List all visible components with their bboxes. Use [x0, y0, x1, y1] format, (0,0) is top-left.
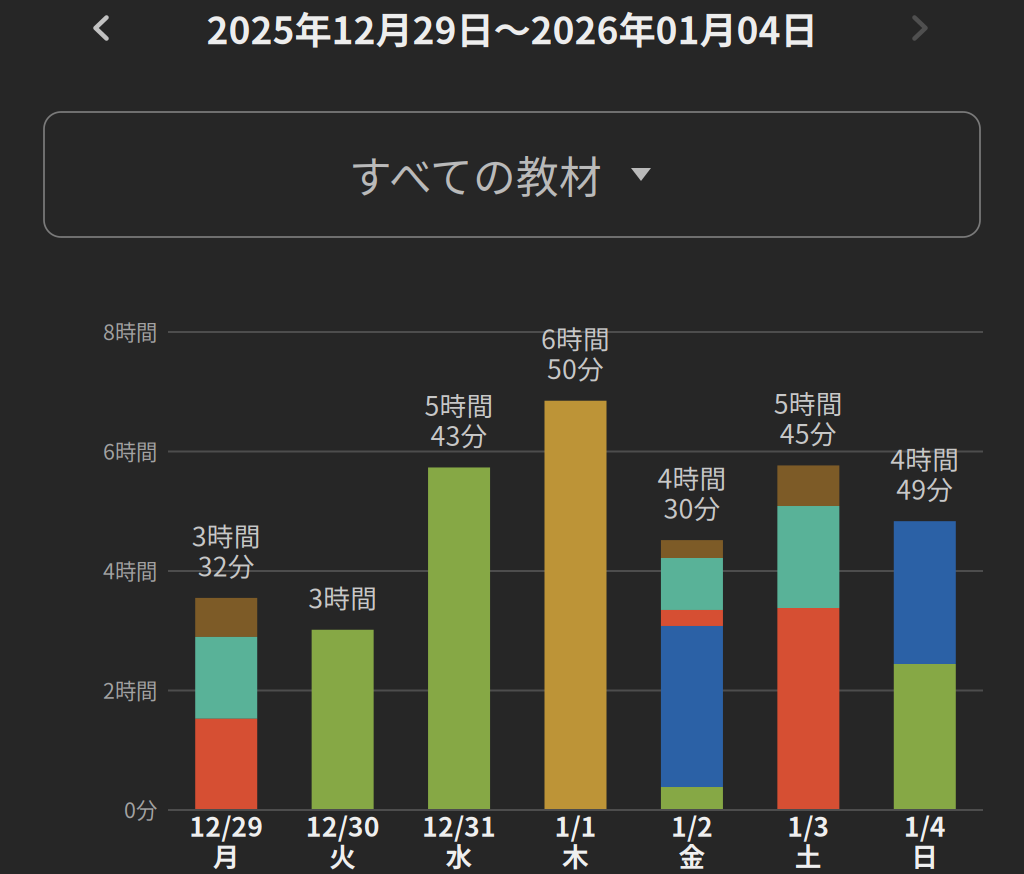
staticText: 4時間: [657, 458, 726, 496]
button[interactable]: 4時間: [634, 0, 750, 809]
button[interactable]: 3時間: [168, 0, 284, 809]
staticText: 日: [911, 836, 938, 874]
button[interactable]: 5時間: [401, 0, 517, 809]
staticText: 0分: [124, 794, 157, 824]
staticText: 金: [678, 836, 705, 874]
staticText: 12/31: [422, 806, 496, 844]
staticText: 6時間: [103, 435, 157, 466]
staticText: 1/2: [671, 806, 713, 844]
button[interactable]: 6時間: [517, 0, 634, 809]
staticText: 43分: [431, 415, 488, 454]
staticText: 45分: [780, 413, 837, 452]
staticText: 土: [795, 836, 822, 874]
staticText: 12/29: [189, 806, 263, 844]
staticText: 月: [213, 836, 240, 874]
staticText: 5時間: [425, 385, 494, 424]
staticText: すべての教材: [349, 144, 602, 205]
button[interactable]: 5時間: [750, 0, 866, 809]
staticText: 火: [329, 836, 356, 874]
staticText: 6時間: [541, 318, 610, 357]
staticText: 3時間: [308, 577, 377, 616]
staticText: 5時間: [774, 383, 843, 422]
staticText: 8時間: [103, 316, 157, 346]
button[interactable]: 前の週: [64, 0, 138, 56]
button[interactable]: 次の週: [883, 0, 957, 56]
button[interactable]: 4時間: [867, 0, 983, 809]
staticText: 1/4: [904, 806, 946, 844]
staticText: 木: [562, 836, 589, 874]
staticText: 30分: [663, 488, 720, 526]
button[interactable]: すべての教材: [44, 112, 980, 237]
staticText: 3時間: [192, 516, 261, 554]
staticText: 50分: [547, 348, 604, 387]
staticText: 4時間: [103, 555, 157, 585]
staticText: 2時間: [103, 674, 157, 705]
staticText: 12/30: [306, 806, 380, 844]
staticText: 水: [446, 836, 473, 874]
staticText: 49分: [896, 469, 953, 507]
staticText: 2025年12月29日〜2026年01月04日: [206, 1, 817, 55]
staticText: 4時間: [890, 439, 959, 477]
staticText: 32分: [198, 546, 255, 584]
staticText: 1/1: [554, 806, 596, 844]
button[interactable]: 3時間: [284, 0, 401, 809]
staticText: 1/3: [787, 806, 829, 844]
